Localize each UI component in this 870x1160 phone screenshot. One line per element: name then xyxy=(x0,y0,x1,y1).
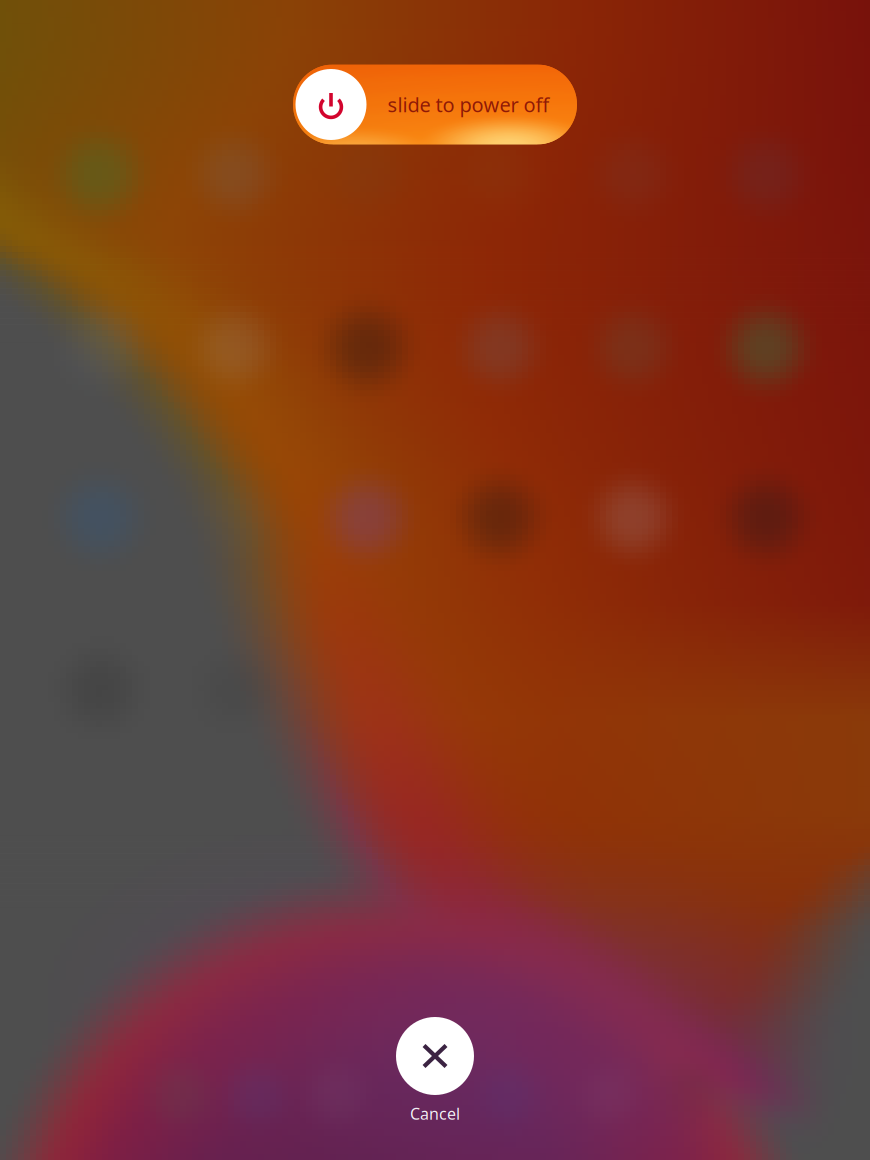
staticText: Cancel xyxy=(410,1103,460,1124)
button[interactable]: Cancel xyxy=(365,1017,505,1132)
staticText: slide to power off xyxy=(387,91,549,118)
button[interactable]: slide to power off xyxy=(293,64,577,144)
